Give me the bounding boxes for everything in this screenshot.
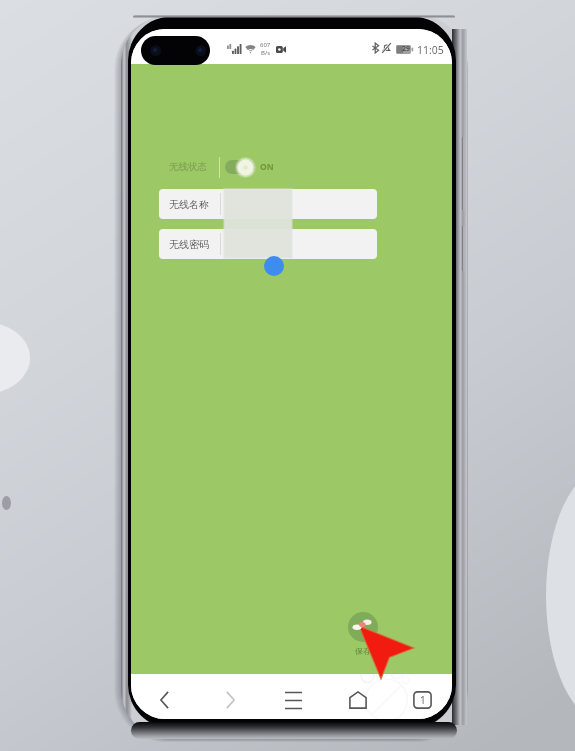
- staticText: 29: [402, 44, 411, 54]
- staticText: 11:05: [417, 43, 444, 57]
- staticText: 保存: [355, 646, 371, 656]
- button[interactable]: Home: [338, 680, 378, 719]
- button[interactable]: 无线状态开关: [168, 155, 278, 179]
- staticText: B/s: [261, 49, 271, 57]
- staticText: 无线名称: [169, 198, 209, 211]
- staticText: ON: [260, 161, 274, 173]
- staticText: 无线密码: [169, 238, 209, 251]
- button[interactable]: Back: [144, 680, 184, 719]
- button[interactable]: 保存: [348, 612, 378, 656]
- button[interactable]: Forward: [210, 680, 250, 719]
- button[interactable]: Menu: [273, 680, 313, 719]
- staticText: 无线状态: [169, 161, 207, 173]
- button[interactable]: 无线密码: [159, 229, 377, 259]
- staticText: 607: [260, 41, 271, 49]
- staticText: 1: [420, 693, 426, 707]
- button[interactable]: Tabs: [402, 680, 442, 719]
- button[interactable]: 无线名称: [159, 189, 377, 219]
